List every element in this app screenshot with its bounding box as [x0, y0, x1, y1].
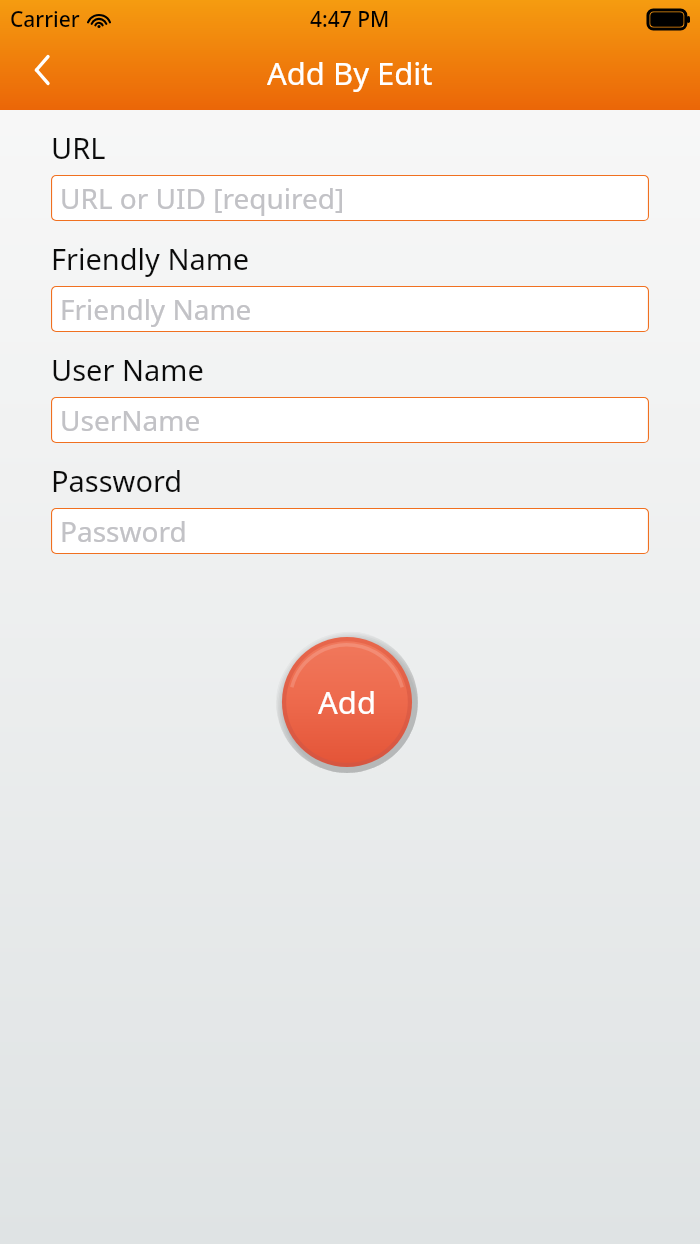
button[interactable]: Password [51, 508, 649, 554]
staticText: UserName [60, 401, 201, 439]
staticText: Add By Edit [267, 52, 433, 94]
staticText: Friendly Name [51, 239, 250, 278]
staticText: URL [51, 128, 106, 167]
button[interactable]: UserName [51, 397, 649, 443]
button[interactable]: Back [14, 42, 70, 98]
button[interactable]: URL or UID [required] [51, 175, 649, 221]
staticText: 4:47 PM [310, 5, 390, 34]
staticText: User Name [51, 350, 204, 389]
staticText: Password [51, 461, 183, 500]
staticText: Add [318, 681, 376, 723]
button[interactable]: Friendly Name [51, 286, 649, 332]
staticText: Password [60, 512, 187, 550]
button[interactable]: Add [276, 631, 418, 773]
staticText: URL or UID [required] [60, 179, 345, 217]
staticText: Carrier [10, 5, 80, 34]
staticText: Friendly Name [60, 290, 252, 328]
